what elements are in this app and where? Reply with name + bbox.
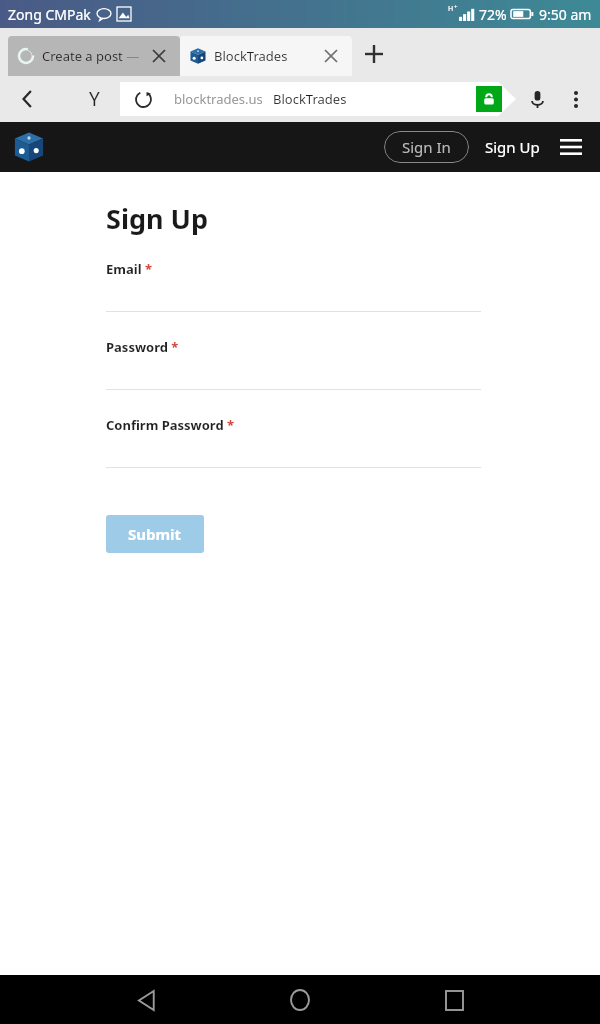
button[interactable]: Recent apps [430,976,478,1024]
staticText: blocktrades.us [174,90,263,108]
button[interactable]: Back [122,976,170,1024]
button[interactable]: Email * [106,260,481,338]
button[interactable]: Voice search [516,78,558,120]
staticText: Zong CMPak [8,5,91,24]
button[interactable]: Secure connection [476,86,502,112]
button[interactable]: BlockTrades home [12,130,46,164]
button[interactable]: Create a post — S [8,36,180,76]
staticText: Password * [106,338,179,356]
button[interactable]: More options [558,81,594,117]
staticText: Create a post — S [42,47,148,65]
staticText: Confirm Password * [106,416,235,434]
button[interactable]: Sign In [384,131,469,163]
button[interactable]: Back [6,77,50,121]
button[interactable]: Menu [554,130,588,164]
staticText: BlockTrades [273,90,347,108]
button[interactable]: Confirm Password * [106,416,481,494]
staticText: 72% [479,5,507,24]
button[interactable]: Home [276,976,324,1024]
button[interactable]: New tab [352,32,396,76]
staticText: BlockTrades [214,47,320,65]
button[interactable]: Close tab [148,45,170,67]
staticText: + [454,3,458,11]
staticText: Sign In [402,137,451,157]
button[interactable]: Submit [106,515,204,553]
staticText: Sign Up [485,137,540,157]
staticText: Email * [106,260,152,278]
button[interactable]: Reload [130,86,156,112]
staticText: 9:50 am [539,5,592,24]
button[interactable]: Close tab [320,45,342,67]
staticText: Y [89,86,100,112]
button[interactable]: Yandex [74,79,114,119]
staticText: H [448,4,454,14]
button[interactable]: Sign Up [481,131,544,163]
button[interactable]: BlockTrades [180,36,352,76]
staticText: Submit [128,524,182,544]
button[interactable]: Password * [106,338,481,416]
staticText: Sign Up [106,200,209,237]
